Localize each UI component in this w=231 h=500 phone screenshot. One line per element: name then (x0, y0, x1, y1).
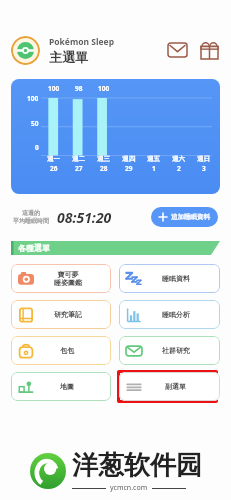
staticText: 28 (100, 164, 108, 173)
staticText: 100 (98, 84, 110, 93)
staticText: 08:51:20 (57, 208, 112, 227)
staticText: 包包 (60, 346, 74, 355)
button[interactable]: 寶可夢 睡姿圖鑑 (11, 264, 111, 293)
staticText: 29 (125, 164, 133, 173)
button[interactable]: 地圖 (11, 372, 111, 401)
staticText: 2 (177, 164, 181, 173)
staticText: ycmcn.com (110, 483, 148, 493)
staticText: 平均睡眠時間 (13, 217, 49, 225)
button[interactable]: 副選單 (119, 372, 220, 401)
staticText: 0 (35, 143, 39, 152)
staticText: 洋葱软件园 (72, 449, 202, 482)
staticText: 週二 (72, 155, 85, 163)
staticText: 週一 (47, 155, 60, 163)
staticText: 27 (75, 164, 83, 173)
staticText: 週三 (97, 155, 110, 163)
button[interactable]: Mail (166, 39, 188, 61)
staticText: 寶可夢 睡姿圖鑑 (54, 270, 82, 287)
button[interactable]: 追加睡眠資料 (151, 207, 218, 227)
staticText: 地圖 (60, 382, 74, 391)
button[interactable]: Profile (11, 36, 40, 65)
staticText: 26 (50, 164, 58, 173)
staticText: 50 (31, 119, 39, 128)
staticText: 98 (75, 84, 83, 93)
staticText: 1 (152, 164, 156, 173)
staticText: 100 (27, 94, 39, 103)
staticText: 追加睡眠資料 (171, 213, 210, 221)
button[interactable]: 包包 (11, 336, 111, 365)
button[interactable]: 100 (11, 79, 220, 194)
button[interactable]: 社群研究 (119, 336, 220, 365)
staticText: Pokémon Sleep (49, 36, 115, 48)
staticText: 主選單 (49, 49, 88, 65)
staticText: 各種選單 (18, 243, 50, 253)
staticText: 週四 (122, 155, 135, 163)
staticText: 副選單 (165, 382, 186, 391)
staticText: 研究筆記 (54, 310, 82, 319)
staticText: 睡眠分析 (162, 310, 190, 319)
staticText: 100 (48, 84, 60, 93)
staticText: 3 (202, 164, 206, 173)
staticText: 這週的 (22, 209, 40, 217)
button[interactable]: 研究筆記 (11, 300, 111, 329)
button[interactable]: 睡眠分析 (119, 300, 220, 329)
staticText: 週五 (147, 155, 160, 163)
staticText: 週日 (197, 155, 210, 163)
button[interactable]: Gifts (198, 39, 220, 61)
staticText: 睡眠資料 (162, 274, 190, 283)
button[interactable]: 睡眠資料 (119, 264, 220, 293)
staticText: 社群研究 (162, 346, 190, 355)
staticText: 週六 (172, 155, 185, 163)
